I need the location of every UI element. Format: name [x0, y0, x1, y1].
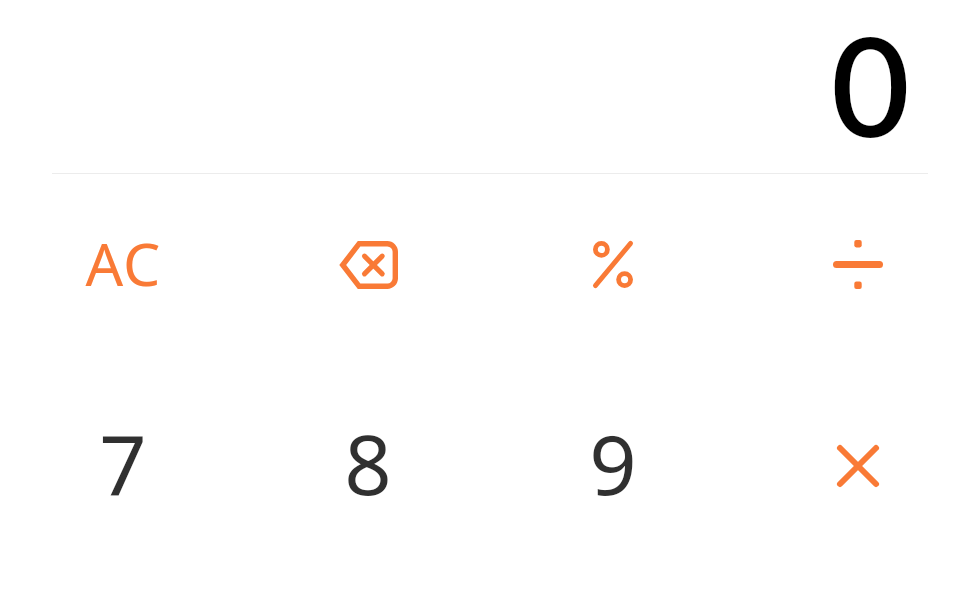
staticText: 0 — [831, 3, 910, 166]
staticText: 9 — [589, 406, 637, 519]
staticText: 7 — [99, 406, 147, 519]
button[interactable]: Multiply — [735, 363, 980, 563]
button[interactable]: 7 — [0, 363, 245, 563]
button[interactable]: 9 — [490, 363, 735, 563]
button[interactable]: Divide — [735, 163, 980, 363]
button[interactable]: Percent — [490, 163, 735, 363]
button[interactable]: AC — [0, 163, 245, 363]
staticText: 8 — [344, 406, 392, 519]
staticText: AC — [85, 223, 162, 303]
button[interactable]: 8 — [245, 363, 490, 563]
button[interactable]: Backspace — [245, 163, 490, 363]
